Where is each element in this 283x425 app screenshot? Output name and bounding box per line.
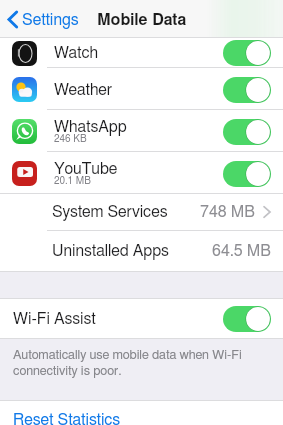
staticText: 748 MB xyxy=(200,204,255,220)
staticText: System Services xyxy=(52,204,168,220)
button[interactable]: Weather xyxy=(0,68,283,109)
staticText: YouTube xyxy=(54,161,118,177)
staticText: Settings xyxy=(22,12,79,28)
staticText: Watch xyxy=(54,45,98,61)
button[interactable]: Wi-Fi Assist xyxy=(0,299,283,338)
staticText: 64.5 MB xyxy=(212,243,271,259)
button[interactable]: Uninstalled Apps xyxy=(0,231,283,271)
staticText: Uninstalled Apps xyxy=(52,243,169,259)
button[interactable]: System Services xyxy=(0,194,283,230)
staticText: Automatically use mobile data when Wi-Fi… xyxy=(13,349,242,377)
button[interactable]: Toggle mobile data xyxy=(223,40,271,66)
staticText: Weather xyxy=(54,82,113,98)
button[interactable]: Toggle mobile data xyxy=(223,306,271,332)
staticText: Wi-Fi Assist xyxy=(13,311,96,327)
staticText: Reset Statistics xyxy=(13,412,121,425)
staticText: Mobile Data xyxy=(97,12,187,28)
button[interactable]: WhatsApp xyxy=(0,110,283,151)
staticText: 246 KB xyxy=(54,134,87,144)
button[interactable]: Toggle mobile data xyxy=(223,161,271,187)
button[interactable]: Reset Statistics xyxy=(0,401,283,425)
button[interactable]: Settings xyxy=(7,11,79,28)
button[interactable]: Toggle mobile data xyxy=(223,77,271,103)
staticText: WhatsApp xyxy=(54,119,127,135)
button[interactable]: Toggle mobile data xyxy=(223,119,271,145)
staticText: 20.1 MB xyxy=(54,176,91,186)
button[interactable]: YouTube xyxy=(0,152,283,193)
button[interactable]: Watch xyxy=(0,37,283,67)
